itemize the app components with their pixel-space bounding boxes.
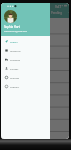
staticText: 9:41 xyxy=(55,5,61,9)
staticText: Pending xyxy=(51,11,62,15)
staticText: Partner xyxy=(10,67,19,70)
staticText: Shipping xyxy=(10,58,20,61)
button[interactable]: Orders xyxy=(1,37,50,46)
staticText: Sophia Hart xyxy=(4,25,20,29)
staticText: Settings xyxy=(10,76,20,79)
button[interactable] xyxy=(1,3,69,139)
staticText: sophia.hart@mail.com xyxy=(4,30,28,33)
button[interactable]: Inventory xyxy=(1,46,50,55)
button[interactable]: Shipping xyxy=(1,55,50,64)
staticText: Inventory xyxy=(10,49,21,52)
button[interactable]: Partner xyxy=(1,64,50,73)
staticText: Support xyxy=(10,85,20,88)
staticText: Orders xyxy=(10,40,18,43)
button[interactable]: Support xyxy=(1,82,50,91)
button[interactable]: Settings xyxy=(1,73,50,82)
